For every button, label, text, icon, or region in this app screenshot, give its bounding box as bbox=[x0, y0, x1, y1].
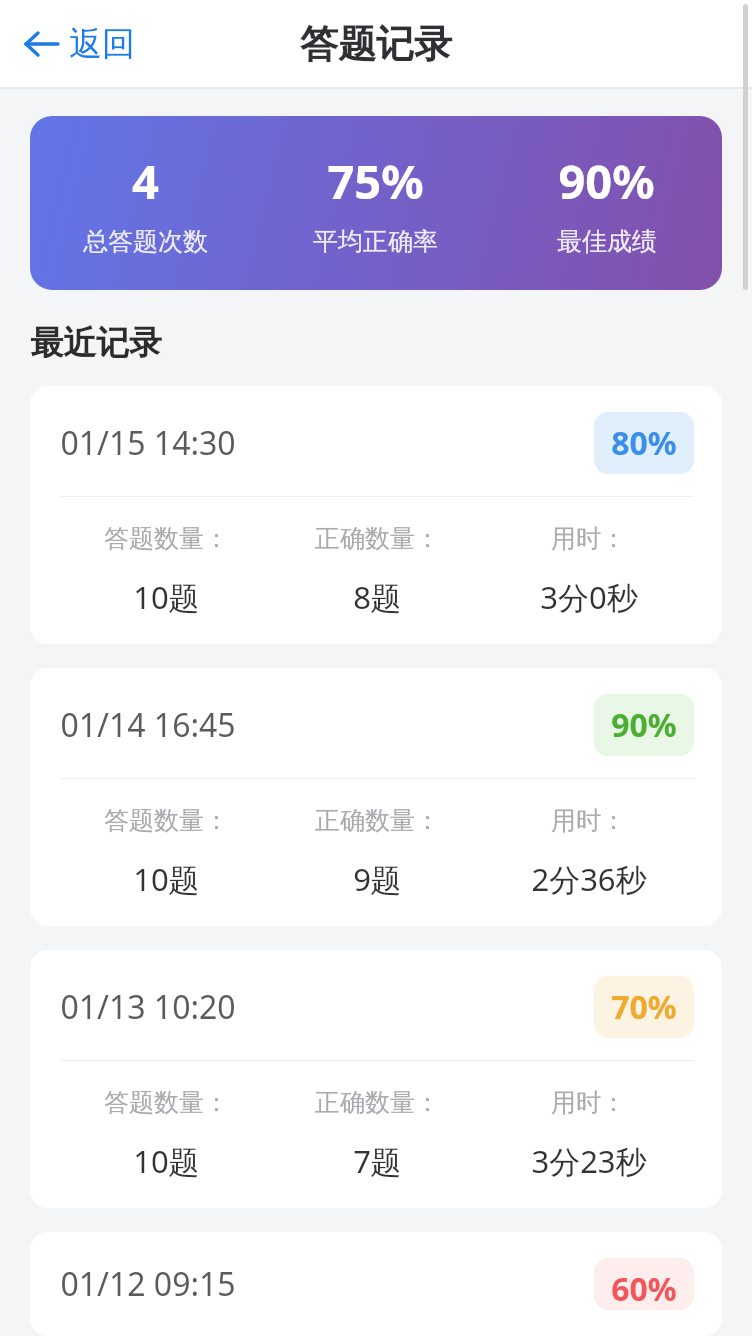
staticText: 正确数量： bbox=[315, 1087, 440, 1118]
staticText: 答题数量： bbox=[104, 1087, 229, 1118]
staticText: 90% bbox=[558, 149, 655, 213]
button[interactable]: 01/15 14:30 bbox=[30, 386, 722, 644]
staticText: 10题 bbox=[133, 858, 200, 900]
staticText: 3分23秒 bbox=[531, 1140, 647, 1182]
staticText: 90% bbox=[611, 703, 677, 747]
staticText: 正确数量： bbox=[315, 523, 440, 554]
staticText: 答题数量： bbox=[104, 805, 229, 836]
staticText: 10题 bbox=[133, 576, 200, 618]
staticText: 9题 bbox=[353, 858, 402, 900]
button[interactable]: 01/14 16:45 bbox=[30, 668, 722, 926]
staticText: 7题 bbox=[353, 1140, 402, 1182]
staticText: 2分36秒 bbox=[531, 858, 647, 900]
button[interactable]: 4 bbox=[30, 116, 722, 290]
staticText: 8题 bbox=[353, 576, 402, 618]
staticText: 总答题次数 bbox=[83, 226, 208, 257]
staticText: 60% bbox=[611, 1267, 677, 1301]
button[interactable]: 01/13 10:20 bbox=[30, 950, 722, 1208]
staticText: 4 bbox=[132, 149, 159, 213]
staticText: 01/15 14:30 bbox=[60, 421, 236, 465]
staticText: 正确数量： bbox=[315, 805, 440, 836]
staticText: 01/13 10:20 bbox=[60, 985, 236, 1029]
staticText: 返回 bbox=[69, 23, 135, 65]
staticText: 平均正确率 bbox=[313, 226, 438, 257]
staticText: 用时： bbox=[551, 523, 626, 554]
staticText: 70% bbox=[611, 985, 677, 1029]
staticText: 最佳成绩 bbox=[557, 226, 657, 257]
staticText: 01/14 16:45 bbox=[60, 703, 236, 747]
staticText: 75% bbox=[327, 149, 424, 213]
staticText: 用时： bbox=[551, 1087, 626, 1118]
staticText: 最近记录 bbox=[30, 322, 162, 364]
staticText: 用时： bbox=[551, 805, 626, 836]
staticText: 10题 bbox=[133, 1140, 200, 1182]
staticText: 答题记录 bbox=[300, 20, 452, 68]
staticText: 80% bbox=[611, 421, 677, 465]
staticText: 3分0秒 bbox=[540, 576, 638, 618]
button[interactable]: Back bbox=[14, 15, 145, 73]
staticText: 01/12 09:15 bbox=[60, 1262, 236, 1306]
staticText: 答题数量： bbox=[104, 523, 229, 554]
button[interactable]: 01/12 09:15 bbox=[30, 1232, 722, 1336]
other: Back bbox=[24, 31, 60, 57]
